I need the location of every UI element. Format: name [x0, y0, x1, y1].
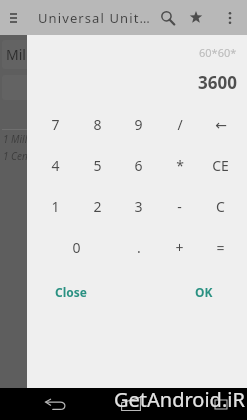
- button[interactable]: Close: [46, 277, 96, 305]
- button[interactable]: Open navigation drawer: [0, 0, 26, 35]
- button[interactable]: More options: [221, 0, 239, 35]
- staticText: 2: [93, 197, 102, 216]
- staticText: C: [216, 197, 225, 216]
- button[interactable]: 2: [76, 186, 118, 227]
- staticText: 4: [51, 156, 60, 175]
- staticText: 60*60*: [199, 45, 237, 60]
- staticText: 5: [93, 156, 102, 175]
- staticText: Millennium: [6, 45, 81, 64]
- button[interactable]: CE: [200, 145, 241, 186]
- button[interactable]: Search: [155, 0, 180, 35]
- staticText: 9: [134, 115, 143, 134]
- button[interactable]: 3: [118, 186, 159, 227]
- button[interactable]: *: [159, 145, 200, 186]
- button[interactable]: =: [200, 227, 241, 268]
- staticText: +: [175, 238, 184, 257]
- button[interactable]: Home: [110, 388, 151, 420]
- button[interactable]: 5: [76, 145, 118, 186]
- button[interactable]: 7: [34, 104, 76, 145]
- button[interactable]: 9: [118, 104, 159, 145]
- staticText: OK: [195, 284, 213, 298]
- staticText: ←: [215, 117, 227, 133]
- button[interactable]: -: [159, 186, 200, 227]
- staticText: 8: [93, 115, 102, 134]
- staticText: /: [177, 115, 183, 134]
- button[interactable]: +: [159, 227, 200, 268]
- button[interactable]: C: [200, 186, 241, 227]
- button[interactable]: Recent apps: [195, 388, 247, 420]
- staticText: 6: [134, 156, 143, 175]
- staticText: 1: [51, 197, 60, 216]
- staticText: GetAndroid.iR: [114, 386, 245, 413]
- button[interactable]: Favorites: [187, 0, 205, 35]
- staticText: 3: [134, 197, 143, 216]
- staticText: 3600: [198, 71, 237, 94]
- button[interactable]: OK: [186, 277, 222, 305]
- button[interactable]: Back: [0, 388, 110, 420]
- button[interactable]: 4: [34, 145, 76, 186]
- button[interactable]: 8: [76, 104, 118, 145]
- staticText: 0: [72, 238, 81, 257]
- button[interactable]: ←: [200, 104, 241, 145]
- button[interactable]: 6: [118, 145, 159, 186]
- button[interactable]: .: [118, 227, 159, 268]
- button[interactable]: 0: [34, 227, 118, 268]
- staticText: Universal Unit…: [38, 9, 151, 27]
- staticText: -: [177, 197, 182, 216]
- staticText: 1 Millennium: [3, 132, 61, 146]
- staticText: 7: [51, 115, 60, 134]
- button[interactable]: /: [159, 104, 200, 145]
- staticText: CE: [212, 156, 229, 175]
- staticText: .: [137, 238, 141, 257]
- staticText: =: [216, 238, 225, 257]
- staticText: 1 Century: [3, 149, 46, 163]
- staticText: Close: [55, 284, 87, 298]
- staticText: *: [176, 156, 184, 175]
- button[interactable]: 1: [34, 186, 76, 227]
